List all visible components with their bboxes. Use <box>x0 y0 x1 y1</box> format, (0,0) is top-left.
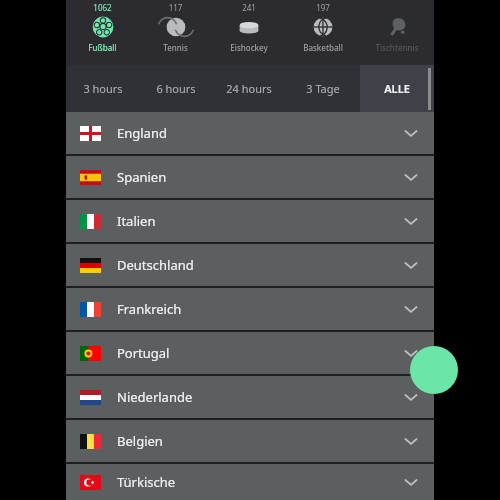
staticText: Frankreich <box>117 300 401 318</box>
button[interactable]: 6 hours <box>139 65 212 112</box>
button[interactable]: 24 hours <box>212 65 286 112</box>
button[interactable]: Niederlande <box>66 376 434 418</box>
button[interactable]: 3 hours <box>66 65 139 112</box>
button[interactable]: Tischtennis <box>360 0 434 65</box>
staticText: 6 hours <box>156 81 196 96</box>
button[interactable]: 117 <box>139 0 212 65</box>
staticText: England <box>117 124 401 142</box>
staticText: Tischtennis <box>360 42 434 53</box>
button[interactable]: Deutschland <box>66 244 434 286</box>
staticText: 24 hours <box>226 81 272 96</box>
staticText: Spanien <box>117 168 401 186</box>
staticText: Portugal <box>117 344 401 362</box>
button[interactable]: Portugal <box>66 332 434 374</box>
staticText: ALLE <box>384 81 410 96</box>
staticText: Niederlande <box>117 388 401 406</box>
button[interactable]: Italien <box>66 200 434 242</box>
staticText: Tennis <box>139 42 212 53</box>
button[interactable]: ALLE <box>360 65 434 112</box>
button[interactable]: Türkische <box>66 464 434 500</box>
button[interactable]: Frankreich <box>66 288 434 330</box>
button[interactable]: 3 Tage <box>286 65 360 112</box>
button[interactable]: Belgien <box>66 420 434 462</box>
staticText: 197 <box>286 2 360 13</box>
button[interactable]: Add <box>410 346 458 394</box>
staticText: Türkische <box>117 473 401 491</box>
staticText: Basketball <box>286 42 360 53</box>
staticText: Italien <box>117 212 401 230</box>
staticText: Belgien <box>117 432 401 450</box>
button[interactable]: 197 <box>286 0 360 65</box>
button[interactable]: 241 <box>212 0 286 65</box>
button[interactable]: Spanien <box>66 156 434 198</box>
staticText: 1062 <box>66 2 139 13</box>
staticText: Deutschland <box>117 256 401 274</box>
staticText: 3 hours <box>83 81 123 96</box>
staticText: 3 Tage <box>306 81 340 96</box>
button[interactable]: England <box>66 112 434 154</box>
staticText: Eishockey <box>212 42 286 53</box>
button[interactable]: 1062 <box>66 0 139 65</box>
staticText: 241 <box>212 2 286 13</box>
staticText: 117 <box>139 2 212 13</box>
staticText: Fußball <box>66 42 139 53</box>
